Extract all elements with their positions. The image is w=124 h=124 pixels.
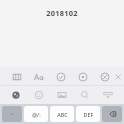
staticText: DEF bbox=[83, 111, 94, 118]
button[interactable]: Sticker bbox=[32, 88, 46, 102]
button[interactable]: Insert bbox=[76, 70, 90, 84]
button[interactable]: Backspace bbox=[102, 106, 122, 122]
button[interactable]: Checklist bbox=[54, 70, 68, 84]
button[interactable]: Text style bbox=[32, 70, 46, 84]
button[interactable]: DEF bbox=[76, 106, 100, 122]
button[interactable]: Symbols bbox=[2, 106, 22, 122]
button[interactable]: Close bbox=[112, 70, 124, 84]
button[interactable]: Search bbox=[78, 88, 92, 102]
button[interactable]: Image bbox=[55, 88, 69, 102]
button[interactable]: Hide keyboard bbox=[101, 88, 115, 102]
button[interactable]: Columns bbox=[10, 70, 24, 84]
button[interactable]: Attach bbox=[98, 70, 112, 84]
button[interactable]: ABC bbox=[50, 106, 74, 122]
staticText: @/: bbox=[32, 111, 41, 118]
button[interactable]: @/: bbox=[24, 106, 48, 122]
staticText: ABC bbox=[57, 111, 68, 118]
button[interactable]: Emoji bbox=[9, 88, 23, 102]
staticText: 2018102 bbox=[46, 8, 78, 18]
